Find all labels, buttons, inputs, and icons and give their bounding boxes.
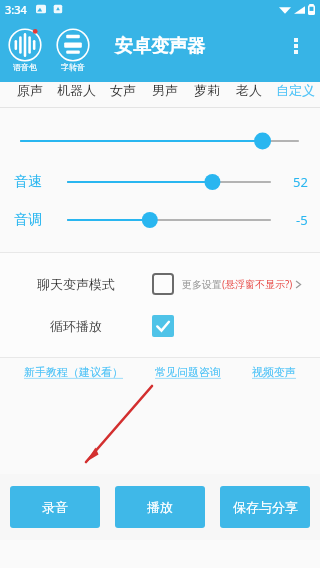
staticText: 保存与分享 [233,499,298,515]
staticText: 字转音 [61,62,85,72]
staticText: 音调 [14,211,42,229]
staticText: 更多设置 [182,278,222,291]
button[interactable]: 播放 [115,486,205,528]
staticText: 循环播放 [50,318,102,334]
button[interactable]: 机器人 [51,82,102,98]
staticText: 52 [293,173,308,191]
staticText: 音速 [14,173,42,191]
staticText: 机器人 [57,82,96,98]
button[interactable]: Loop playback checkbox [152,315,174,337]
staticText: (悬浮窗不显示?) [222,277,293,291]
staticText: 3:34 [5,2,27,17]
button[interactable]: 萝莉 [186,82,228,98]
button[interactable] [68,171,270,193]
button[interactable]: More options [280,30,312,62]
staticText: 常见问题咨询 [155,365,221,379]
staticText: 视频变声 [252,365,296,379]
staticText: 语音包 [13,62,37,72]
staticText: 新手教程（建议看） [24,365,123,379]
staticText: 女声 [110,82,136,98]
staticText: 录音 [42,499,68,515]
button[interactable]: Chat voice mode checkbox [152,273,174,295]
button[interactable]: 更多设置 [182,277,302,291]
button[interactable]: 字转音 [54,28,92,72]
button[interactable]: 视频变声 [236,365,312,379]
button[interactable]: 老人 [228,82,270,98]
staticText: -5 [296,211,308,229]
staticText: 聊天变声模式 [37,276,115,292]
staticText: 安卓变声器 [115,35,205,58]
button[interactable]: 新手教程（建议看） [8,365,139,379]
button[interactable]: 录音 [10,486,100,528]
button[interactable]: 语音包 [6,28,44,72]
staticText: 自定义 [276,82,315,98]
staticText: 原声 [17,82,43,98]
button[interactable] [21,130,298,152]
button[interactable]: 男声 [144,82,186,98]
button[interactable]: 保存与分享 [220,486,310,528]
button[interactable]: 原声 [8,82,51,98]
button[interactable]: 自定义 [270,82,320,98]
staticText: 老人 [236,82,262,98]
button[interactable]: 女声 [102,82,144,98]
staticText: 萝莉 [194,82,220,98]
button[interactable]: 常见问题咨询 [139,365,236,379]
staticText: 男声 [152,82,178,98]
button[interactable] [68,209,270,231]
staticText: 播放 [147,499,173,515]
